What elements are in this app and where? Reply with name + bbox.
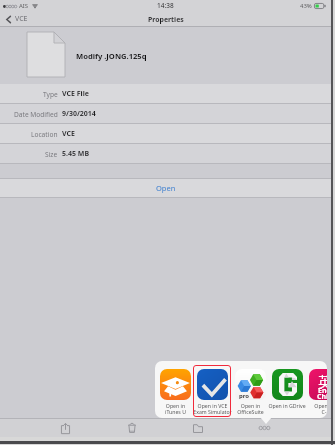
button[interactable]: Size xyxy=(0,144,331,164)
button[interactable]: 英 xyxy=(305,365,327,417)
staticText: AIS xyxy=(19,2,29,10)
button[interactable]: More xyxy=(247,419,281,437)
staticText: Chin xyxy=(317,392,327,400)
staticText: Eng xyxy=(318,386,327,396)
button[interactable]: Delete xyxy=(115,419,149,437)
staticText: VCE File xyxy=(62,89,89,99)
staticText: Open in GDrive xyxy=(268,402,306,409)
button[interactable]: Location xyxy=(0,124,331,144)
staticText: 43% xyxy=(300,2,312,10)
staticText: Open in iTunes U xyxy=(165,402,186,415)
button[interactable]: Open in GDrive xyxy=(268,365,306,417)
button[interactable]: Share xyxy=(48,419,82,437)
staticText: 9/30/2014 xyxy=(62,109,96,119)
staticText: pro xyxy=(239,392,250,400)
staticText: Open xyxy=(156,183,176,193)
staticText: 英 xyxy=(318,371,327,391)
button[interactable]: Type xyxy=(0,84,331,104)
staticText: Date Modified xyxy=(14,110,58,119)
staticText: Modify .JONG.125q xyxy=(76,51,147,61)
staticText: Location xyxy=(31,130,58,139)
button[interactable]: Open in VCE Exam Simulator xyxy=(193,365,231,417)
staticText: Open in VCE Exam Simulator xyxy=(193,402,232,415)
staticText: Open in C- xyxy=(314,402,327,415)
staticText: Type xyxy=(43,90,58,99)
staticText: 5.45 MB xyxy=(62,149,90,159)
staticText: 14:38 xyxy=(157,1,174,10)
staticText: Size xyxy=(45,150,58,159)
button[interactable]: Date Modified xyxy=(0,104,331,124)
staticText: VCE xyxy=(15,14,28,24)
button[interactable]: VCE xyxy=(6,14,28,24)
staticText: Properties xyxy=(148,15,184,24)
button[interactable]: Open xyxy=(0,178,331,198)
button[interactable]: Move to folder xyxy=(181,419,215,437)
button[interactable]: pro xyxy=(231,365,269,417)
staticText: VCE xyxy=(62,129,75,139)
staticText: Open in OfficeSuite xyxy=(237,402,264,415)
button[interactable]: Open in iTunes U xyxy=(156,365,194,417)
